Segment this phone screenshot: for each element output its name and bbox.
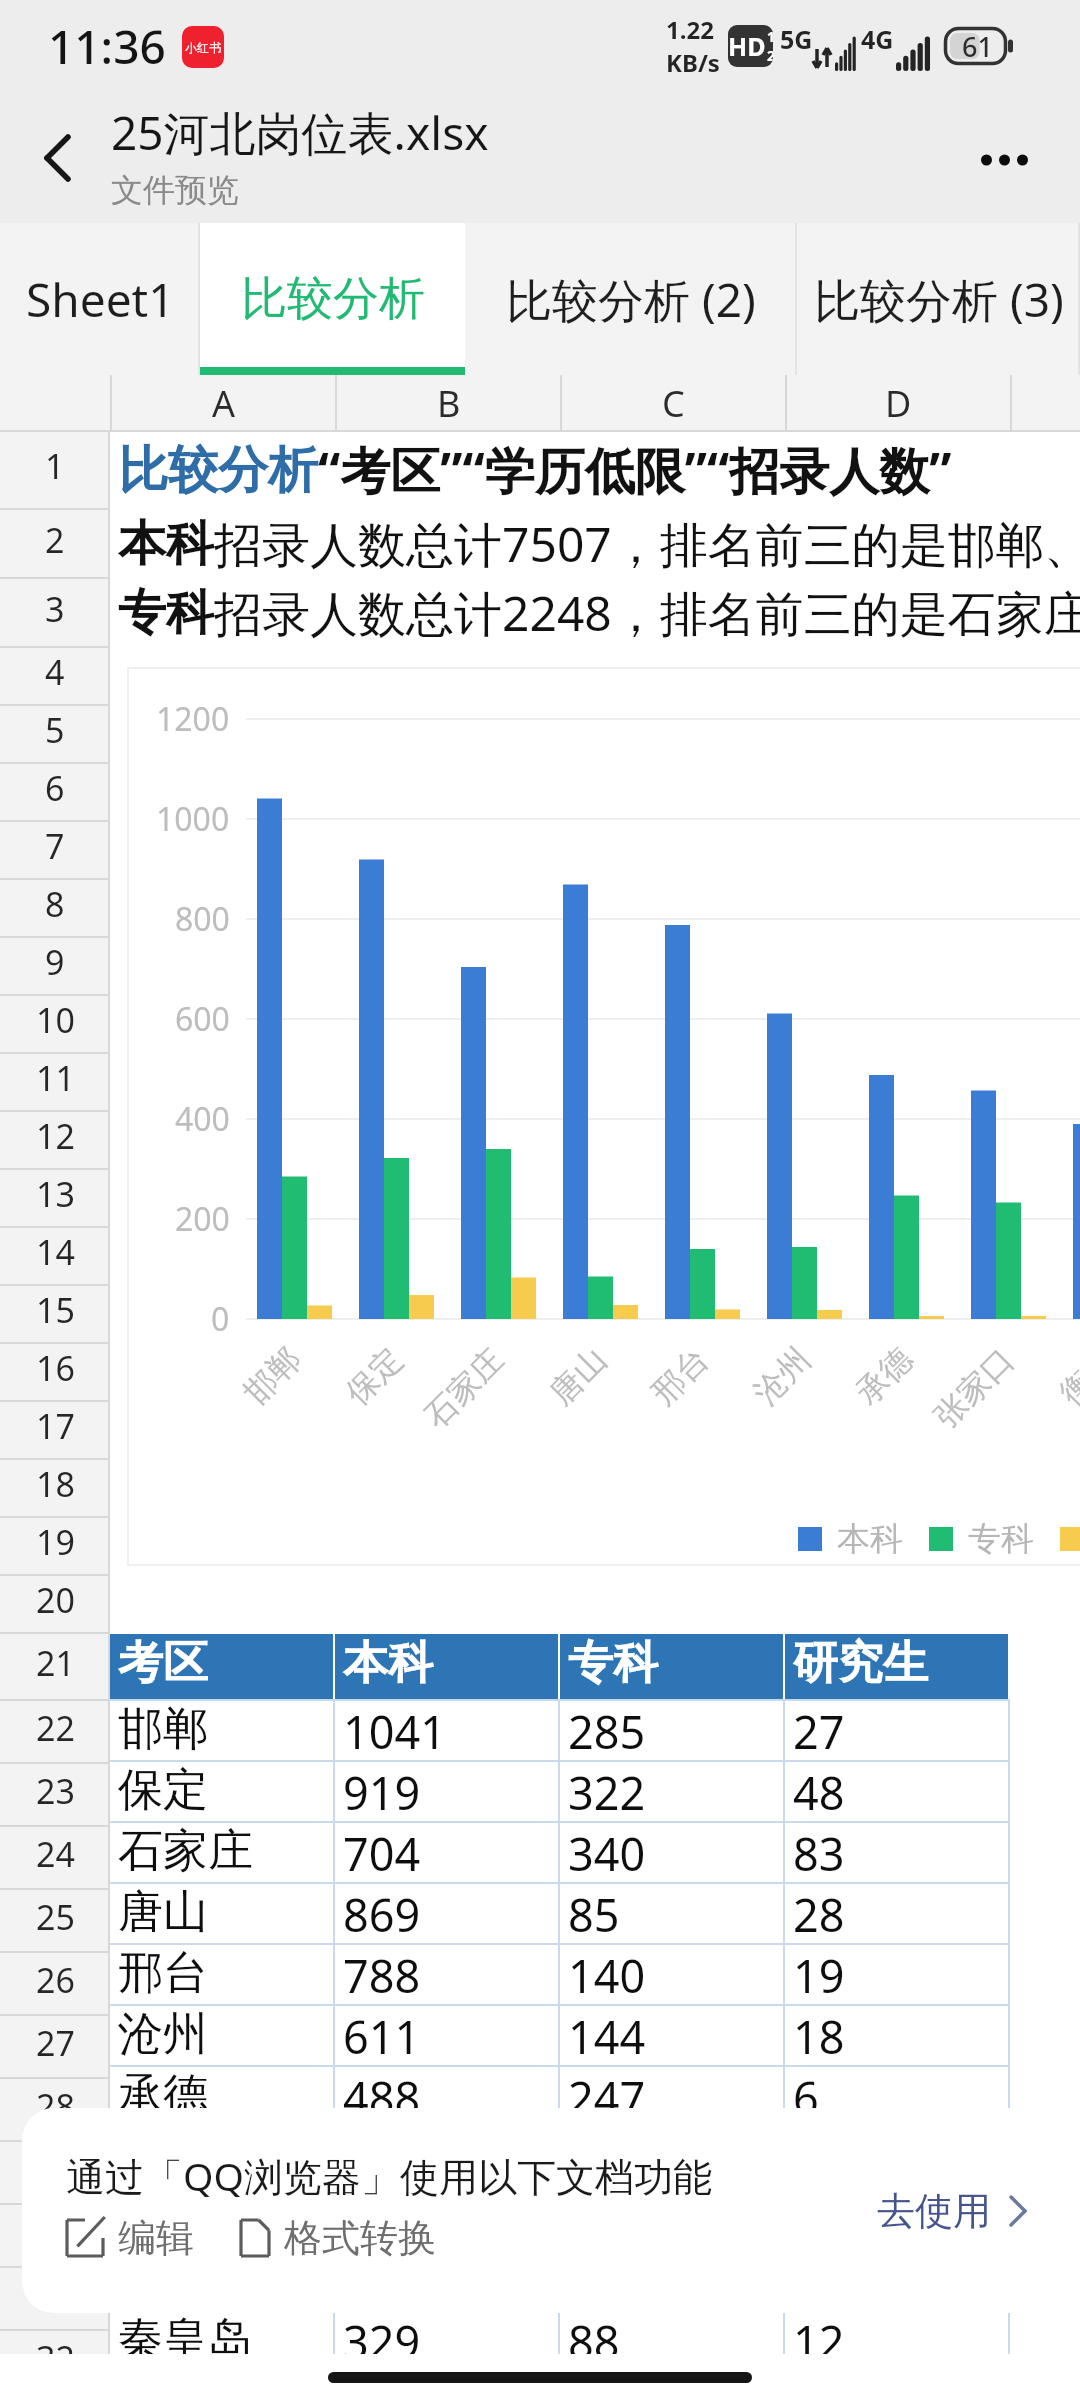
staticText: D — [885, 379, 912, 428]
staticText: 9 — [45, 939, 65, 985]
staticText: 28 — [36, 2083, 75, 2129]
staticText: HD — [728, 29, 766, 63]
staticText: 保定 — [118, 1762, 208, 1813]
staticText: 招录人数总计7507，排名前三的是邯郸、保 — [214, 511, 1080, 577]
staticText: 22 — [36, 1705, 75, 1751]
staticText: 邯郸 — [235, 1339, 309, 1413]
staticText: 5G — [780, 22, 813, 56]
staticText: 编辑 — [118, 2214, 194, 2262]
staticText: 比较分析 (3) — [814, 268, 1064, 331]
staticText: 869 — [343, 1884, 421, 1935]
staticText: 88 — [568, 2311, 620, 2362]
staticText: 25 — [36, 1894, 75, 1940]
staticText: 格式转换 — [284, 2214, 436, 2262]
staticText: 2 — [767, 46, 773, 65]
staticText: 1200 — [156, 697, 230, 741]
staticText: 10 — [36, 997, 75, 1043]
staticText: 322 — [568, 1762, 646, 1813]
staticText: 衡水 — [118, 2189, 208, 2240]
staticText: 488 — [343, 2067, 421, 2118]
staticText: C — [662, 379, 685, 428]
button[interactable]: 比较分析 (2) — [465, 223, 797, 375]
staticText: 招录人数总计2248，排名前三的是石家庄、 — [214, 580, 1080, 646]
staticText: 26 — [36, 1957, 75, 2003]
staticText: 16 — [36, 1345, 75, 1391]
staticText: 83 — [793, 1823, 845, 1874]
staticText: 24 — [36, 1831, 75, 1877]
staticText: 21 — [36, 1640, 75, 1686]
staticText: 18 — [793, 2006, 845, 2057]
staticText: 600 — [175, 997, 230, 1041]
staticText: 邯郸 — [118, 1701, 208, 1752]
staticText: 11:36 — [48, 15, 166, 78]
staticText: 去使用 — [877, 2187, 991, 2235]
staticText: 承德 — [847, 1339, 921, 1413]
staticText: 17 — [36, 1403, 75, 1449]
staticText: 247 — [568, 2067, 646, 2118]
staticText: A — [212, 379, 236, 428]
staticText: 石家庄 — [118, 1823, 253, 1874]
staticText: 30 — [36, 2209, 75, 2255]
staticText: 200 — [175, 1197, 230, 1241]
staticText: 沧州 — [118, 2006, 208, 2057]
staticText: 31 — [36, 2272, 75, 2318]
staticText: 石家庄 — [416, 1340, 512, 1436]
staticText: Sheet1 — [26, 268, 175, 331]
button[interactable]: 编辑 — [66, 2214, 194, 2262]
staticText: 48 — [793, 1762, 845, 1813]
staticText: 2 — [45, 517, 65, 563]
button[interactable]: 比较分析 (3) — [797, 223, 1080, 375]
button[interactable]: Back — [14, 115, 100, 201]
staticText: 廊坊 — [118, 2250, 208, 2301]
staticText: B — [437, 379, 461, 428]
button[interactable]: Sheet1 — [0, 223, 200, 375]
staticText: 340 — [568, 1823, 646, 1874]
staticText: 400 — [175, 1097, 230, 1141]
staticText: 23 — [36, 1768, 75, 1814]
staticText: 张家口 — [926, 1340, 1022, 1436]
staticText: 通过「QQ浏览器」使用以下文档功能 — [66, 2149, 712, 2202]
staticText: 611 — [343, 2006, 421, 2057]
staticText: 4 — [45, 649, 65, 695]
staticText: 5 — [45, 707, 65, 753]
staticText: 13 — [36, 1171, 75, 1217]
staticText: 邢台 — [643, 1339, 717, 1413]
staticText: 秦皇岛 — [118, 2311, 253, 2362]
staticText: 1 — [767, 27, 773, 46]
staticText: 专科 — [568, 1635, 658, 1692]
staticText: 邢台 — [118, 1945, 208, 1996]
staticText: 研究生 — [793, 1635, 928, 1692]
staticText: 4G — [861, 22, 894, 56]
staticText: 27 — [793, 1701, 845, 1752]
staticText: 衡水 — [1051, 1339, 1080, 1413]
staticText: 800 — [175, 897, 230, 941]
button[interactable]: 格式转换 — [240, 2214, 436, 2262]
staticText: 保定 — [337, 1339, 411, 1413]
staticText: 233 — [568, 2128, 646, 2179]
staticText: 0 — [211, 1297, 230, 1341]
button[interactable]: 去使用 — [877, 2187, 1027, 2235]
button[interactable]: 比较分析 — [200, 223, 465, 375]
staticText: 11 — [36, 1055, 75, 1101]
staticText: 1041 — [343, 1701, 446, 1752]
staticText: 19 — [793, 1945, 845, 1996]
staticText: 29 — [36, 2146, 75, 2192]
staticText: 8 — [45, 881, 65, 927]
staticText: 7 — [45, 823, 65, 869]
staticText: 6 — [793, 2067, 819, 2118]
staticText: 14 — [36, 1229, 75, 1275]
button[interactable]: More options — [959, 115, 1049, 205]
staticText: 3 — [45, 586, 65, 632]
staticText: 1.22 — [666, 13, 714, 46]
staticText: 19 — [36, 1519, 75, 1565]
staticText: 比较分析 — [241, 270, 425, 328]
staticText: 12 — [793, 2311, 845, 2362]
staticText: 本科 — [837, 1518, 903, 1560]
staticText: 144 — [568, 2006, 646, 2057]
staticText: 小红书 — [185, 40, 221, 55]
staticText: 27 — [36, 2020, 75, 2066]
staticText: 61 — [962, 28, 993, 65]
staticText: 比较分析 (2) — [506, 268, 756, 331]
